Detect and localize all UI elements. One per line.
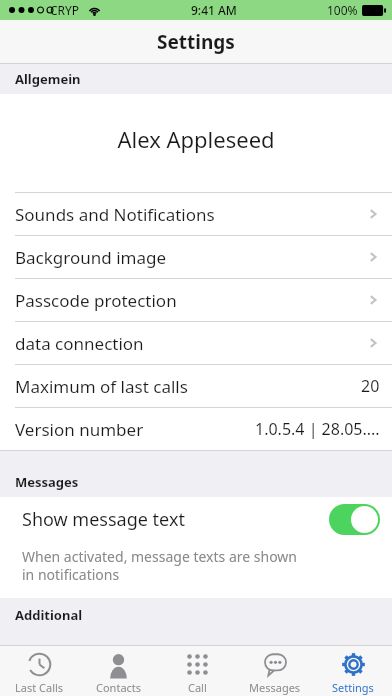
staticText: Sounds and Notifications [15,203,215,226]
staticText: 1.0.5.4 | 28.05.... [255,418,380,440]
button[interactable]: Passcode protection [0,279,392,321]
button[interactable]: Maximum of last calls [0,365,392,407]
staticText: When activated, message texts are shown … [22,547,302,584]
staticText: Contacts [96,680,142,695]
staticText: Messages [249,680,301,695]
staticText: Additional [15,606,83,624]
staticText: Settings [332,680,374,695]
button[interactable]: Show message text toggle [329,504,380,535]
staticText: data connection [15,332,144,355]
button[interactable]: Show message text [0,497,392,541]
button[interactable]: Last Calls [0,646,79,696]
button[interactable]: Alex Appleseed [0,94,392,192]
staticText: Call [188,680,207,695]
staticText: Show message text [22,507,185,532]
staticText: Passcode protection [15,289,177,312]
staticText: Maximum of last calls [15,375,188,398]
staticText: Version number [15,418,144,441]
button[interactable]: Background image [0,236,392,278]
staticText: Background image [15,246,166,269]
button[interactable]: Messages [236,646,314,696]
staticText: Settings [157,29,235,55]
staticText: CRYP [50,2,80,18]
staticText: Allgemein [15,70,81,88]
staticText: 100% [327,2,358,18]
button[interactable]: Version number [0,408,392,450]
staticText: Last Calls [15,680,64,695]
staticText: 9:41 AM [191,2,237,18]
button[interactable]: Call [158,646,236,696]
button[interactable]: Sounds and Notifications [0,193,392,235]
staticText: 20 [361,375,380,397]
staticText: Alex Appleseed [117,124,275,154]
button[interactable]: Contacts [79,646,158,696]
button[interactable]: data connection [0,322,392,364]
staticText: Messages [15,473,79,491]
button[interactable]: Settings [314,646,392,696]
